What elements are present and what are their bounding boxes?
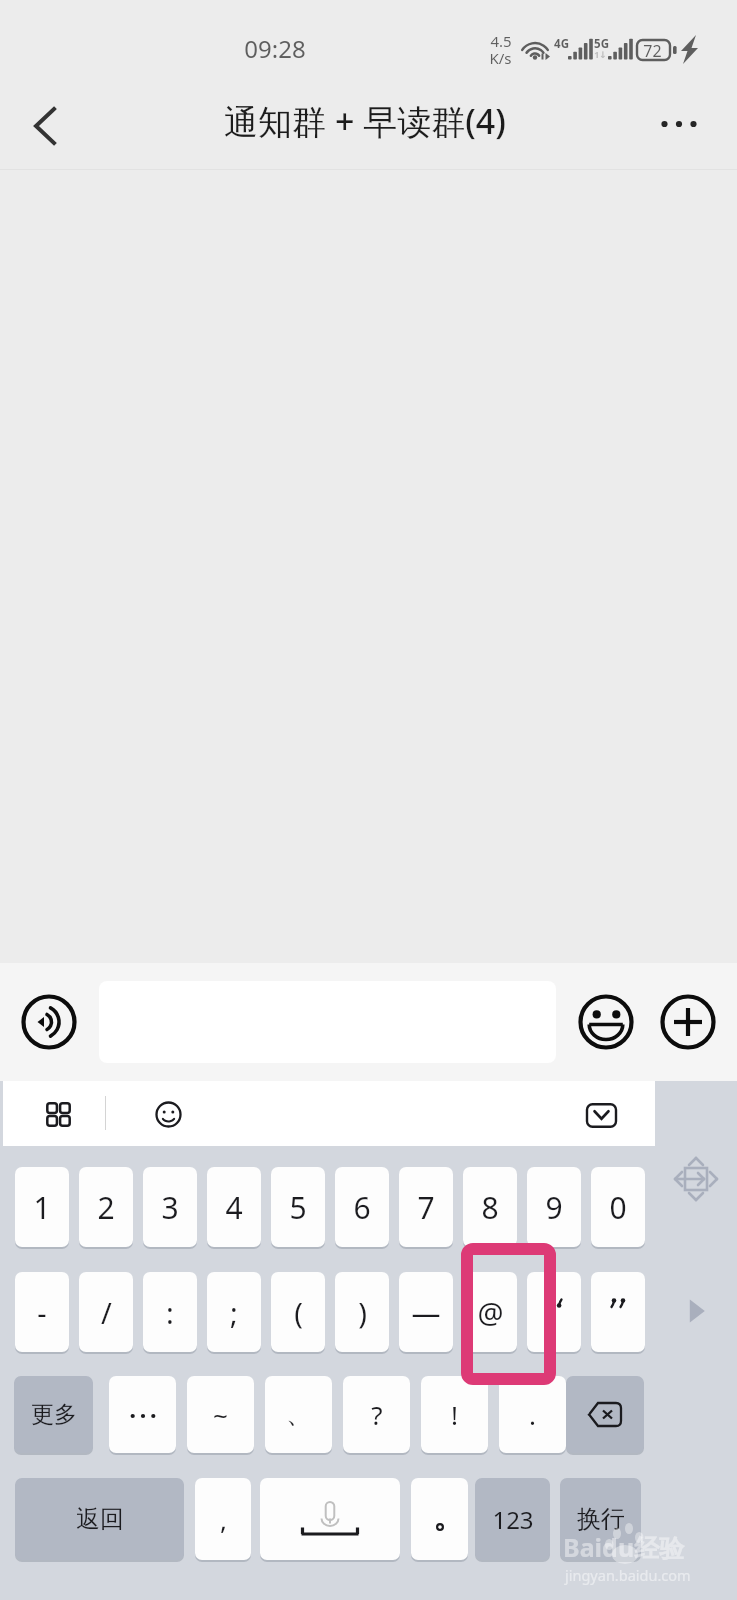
button[interactable]: Emoji keyboard bbox=[141, 1086, 196, 1141]
button[interactable]: Emoji bbox=[575, 991, 637, 1053]
staticText: 4G bbox=[554, 36, 569, 52]
button[interactable]: ! bbox=[421, 1376, 488, 1453]
other: Period bbox=[411, 1478, 468, 1560]
button[interactable]: 、 bbox=[265, 1376, 332, 1453]
staticText: / bbox=[101, 1293, 112, 1332]
staticText: ~ bbox=[213, 1397, 228, 1432]
button[interactable]: Move keyboard bbox=[660, 1143, 732, 1215]
staticText: 5G bbox=[594, 36, 609, 52]
button[interactable] bbox=[109, 1376, 176, 1453]
button[interactable]: 0 bbox=[591, 1167, 645, 1247]
button[interactable]: Voice input bbox=[18, 991, 80, 1053]
other: Left quote bbox=[527, 1272, 581, 1352]
staticText: 、 bbox=[286, 1398, 312, 1431]
staticText: 4 bbox=[225, 1187, 243, 1228]
staticText: 3 bbox=[161, 1187, 179, 1228]
staticText: 1 bbox=[33, 1187, 51, 1228]
button[interactable]: ) bbox=[335, 1272, 389, 1352]
staticText: 1↓ bbox=[594, 48, 607, 60]
button[interactable]: 换行 bbox=[560, 1478, 641, 1560]
button[interactable]: Backspace bbox=[566, 1376, 644, 1453]
staticText: 更多 bbox=[31, 1400, 77, 1429]
staticText: 2 bbox=[97, 1187, 115, 1228]
staticText: 8 bbox=[481, 1187, 499, 1228]
button[interactable]: 2 bbox=[79, 1167, 133, 1247]
staticText: 7 bbox=[417, 1187, 435, 1228]
button[interactable]: 5 bbox=[271, 1167, 325, 1247]
staticText: : bbox=[166, 1293, 174, 1332]
staticText: — bbox=[411, 1293, 441, 1332]
staticText: ( bbox=[294, 1293, 303, 1332]
button[interactable]: ; bbox=[207, 1272, 261, 1352]
button[interactable]: 返回 bbox=[15, 1478, 184, 1560]
button[interactable]: 1 bbox=[15, 1167, 69, 1247]
staticText: 6 bbox=[353, 1187, 371, 1228]
staticText: ; bbox=[230, 1293, 238, 1332]
button[interactable]: Left quote bbox=[527, 1272, 581, 1352]
staticText: 通知群 + 早读群(4) bbox=[224, 98, 506, 144]
button[interactable]: . bbox=[499, 1376, 566, 1453]
staticText: 9 bbox=[545, 1187, 563, 1228]
staticText: ? bbox=[371, 1397, 383, 1432]
button[interactable]: ~ bbox=[187, 1376, 254, 1453]
staticText: 换行 bbox=[577, 1504, 625, 1534]
button[interactable]: Space bbox=[260, 1478, 400, 1560]
staticText: K/s bbox=[489, 48, 512, 68]
other: Backspace bbox=[566, 1376, 644, 1453]
staticText: @ bbox=[477, 1293, 504, 1332]
staticText: 返回 bbox=[76, 1504, 124, 1534]
button[interactable]: 4 bbox=[207, 1167, 261, 1247]
button[interactable]: 3 bbox=[143, 1167, 197, 1247]
button[interactable]: More options bbox=[641, 82, 737, 170]
button[interactable]: Period bbox=[411, 1478, 468, 1560]
staticText: jingyan.baidu.com bbox=[565, 1565, 691, 1585]
staticText: 5 bbox=[289, 1187, 307, 1228]
button[interactable]: Right quote bbox=[591, 1272, 645, 1352]
button[interactable]: ? bbox=[343, 1376, 410, 1453]
button[interactable]: Keyboard layouts bbox=[31, 1086, 86, 1141]
staticText: . bbox=[529, 1397, 536, 1432]
staticText: 72 bbox=[643, 40, 662, 62]
other: Space bbox=[260, 1478, 400, 1560]
button[interactable]: / bbox=[79, 1272, 133, 1352]
other: Right quote bbox=[591, 1272, 645, 1352]
button[interactable]: ( bbox=[271, 1272, 325, 1352]
button[interactable]: More functions bbox=[657, 991, 719, 1053]
button[interactable]: 6 bbox=[335, 1167, 389, 1247]
button[interactable]: @ bbox=[463, 1272, 517, 1352]
staticText: ) bbox=[358, 1293, 367, 1332]
button[interactable]: : bbox=[143, 1272, 197, 1352]
staticText: 4.5 bbox=[490, 31, 512, 51]
button[interactable]: , bbox=[195, 1478, 251, 1560]
button[interactable]: 123 bbox=[475, 1478, 550, 1560]
button[interactable]: 更多 bbox=[14, 1376, 93, 1453]
button[interactable]: - bbox=[15, 1272, 69, 1352]
staticText: 0 bbox=[609, 1187, 627, 1228]
staticText: - bbox=[37, 1293, 47, 1332]
button[interactable]: — bbox=[399, 1272, 453, 1352]
staticText: 123 bbox=[492, 1503, 534, 1536]
staticText: 09:28 bbox=[244, 32, 306, 65]
staticText: ! bbox=[451, 1397, 458, 1432]
staticText: , bbox=[220, 1502, 227, 1537]
button[interactable]: Back bbox=[0, 82, 84, 170]
button[interactable]: Hide keyboard bbox=[573, 1089, 628, 1144]
button[interactable]: 9 bbox=[527, 1167, 581, 1247]
button[interactable]: 8 bbox=[463, 1167, 517, 1247]
button[interactable]: 7 bbox=[399, 1167, 453, 1247]
button[interactable]: Expand panel bbox=[666, 1281, 726, 1341]
staticText: Baidu经验 bbox=[563, 1530, 685, 1564]
